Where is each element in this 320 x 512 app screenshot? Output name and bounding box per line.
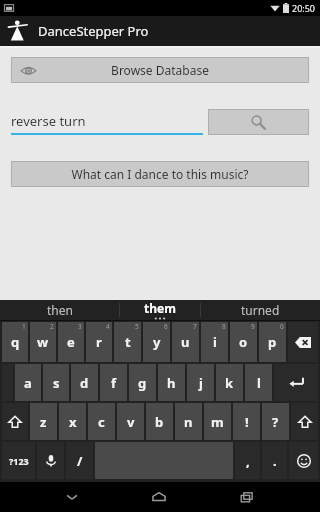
staticText: y	[153, 333, 161, 351]
button[interactable]: 6	[143, 322, 170, 362]
button[interactable]: Enter	[274, 364, 318, 401]
staticText: n	[184, 413, 193, 431]
button[interactable]: h	[158, 364, 185, 401]
staticText: 8	[222, 322, 226, 331]
staticText: reverse turn	[11, 112, 86, 130]
button[interactable]: Delete	[288, 322, 318, 362]
button[interactable]: Hide keyboard	[57, 482, 87, 512]
button[interactable]: l	[245, 364, 272, 401]
staticText: ,	[246, 452, 250, 470]
staticText: them	[144, 300, 176, 316]
button[interactable]: m	[204, 403, 231, 440]
staticText: o	[239, 333, 248, 351]
button[interactable]: .	[262, 442, 287, 479]
staticText: 1	[22, 322, 26, 331]
staticText: g	[138, 374, 147, 392]
staticText: turned	[241, 302, 280, 318]
staticText: t	[125, 333, 131, 351]
button[interactable]: turned	[201, 300, 320, 320]
button[interactable]: g	[129, 364, 156, 401]
staticText: x	[69, 413, 77, 431]
button[interactable]: s	[43, 364, 69, 401]
staticText: c	[98, 413, 105, 431]
staticText: z	[40, 413, 47, 431]
button[interactable]: f	[100, 364, 127, 401]
staticText: 9	[251, 322, 255, 331]
button[interactable]: 8	[201, 322, 228, 362]
button[interactable]: x	[59, 403, 86, 440]
staticText: v	[127, 413, 135, 431]
button[interactable]: ?	[262, 403, 289, 440]
button[interactable]: k	[216, 364, 243, 401]
button[interactable]: 4	[86, 322, 112, 362]
button[interactable]: ,	[235, 442, 260, 479]
button[interactable]: 3	[58, 322, 84, 362]
staticText: then	[47, 302, 73, 318]
staticText: w	[37, 333, 49, 351]
staticText: b	[155, 413, 164, 431]
button[interactable]: j	[187, 364, 214, 401]
button[interactable]: 0	[259, 322, 286, 362]
button[interactable]: 5	[114, 322, 141, 362]
staticText: 4	[106, 322, 110, 331]
button[interactable]: v	[117, 403, 144, 440]
button[interactable]: Voice input	[37, 442, 64, 479]
staticText: /	[77, 452, 83, 470]
staticText: u	[181, 333, 190, 351]
staticText: h	[167, 374, 176, 392]
button[interactable]: 1	[2, 322, 28, 362]
button[interactable]: d	[71, 364, 98, 401]
staticText: 3	[78, 322, 82, 331]
staticText: !	[245, 413, 249, 431]
staticText: 7	[193, 322, 197, 331]
staticText: DanceStepper Pro	[38, 22, 149, 40]
staticText: 6	[164, 322, 168, 331]
button[interactable]: them	[120, 300, 200, 320]
button[interactable]: Search	[209, 110, 308, 134]
staticText: r	[96, 333, 102, 351]
staticText: .	[273, 452, 277, 470]
button[interactable]: /	[66, 442, 93, 479]
button[interactable]: c	[88, 403, 115, 440]
staticText: a	[24, 374, 32, 392]
button[interactable]: Shift	[2, 403, 28, 440]
staticText: ?123	[9, 455, 29, 467]
button[interactable]: a	[15, 364, 41, 401]
staticText: p	[268, 333, 277, 351]
button[interactable]: 9	[230, 322, 257, 362]
staticText: e	[67, 333, 75, 351]
staticText: What can I dance to this music?	[71, 166, 249, 182]
staticText: l	[257, 374, 261, 392]
staticText: 20:50	[292, 2, 316, 14]
button[interactable]: What can I dance to this music?	[12, 162, 308, 186]
staticText: d	[80, 374, 89, 392]
staticText: m	[211, 413, 224, 431]
staticText: 2	[50, 322, 54, 331]
button[interactable]: then	[0, 300, 119, 320]
staticText: q	[11, 333, 20, 351]
button[interactable]: !	[233, 403, 260, 440]
button[interactable]: 2	[30, 322, 56, 362]
staticText: 5	[135, 322, 139, 331]
staticText: k	[225, 374, 234, 392]
button[interactable]: b	[146, 403, 173, 440]
button[interactable]: Emoji	[289, 442, 318, 479]
button[interactable]: Home	[144, 482, 174, 512]
staticText: s	[53, 374, 60, 392]
button[interactable]: ?123	[2, 442, 35, 479]
button[interactable]: Shift	[291, 403, 318, 440]
button[interactable]: Recents	[232, 482, 262, 512]
staticText: 0	[280, 322, 284, 331]
button[interactable]: Browse Database	[12, 58, 308, 82]
button[interactable]: n	[175, 403, 202, 440]
staticText: f	[111, 374, 117, 392]
staticText: ?	[272, 413, 279, 431]
button[interactable]: z	[30, 403, 57, 440]
button[interactable]: 7	[172, 322, 199, 362]
staticText: Browse Database	[111, 62, 209, 78]
staticText: j	[199, 374, 203, 392]
button[interactable]: reverse turn	[11, 112, 203, 135]
staticText: i	[213, 333, 217, 351]
